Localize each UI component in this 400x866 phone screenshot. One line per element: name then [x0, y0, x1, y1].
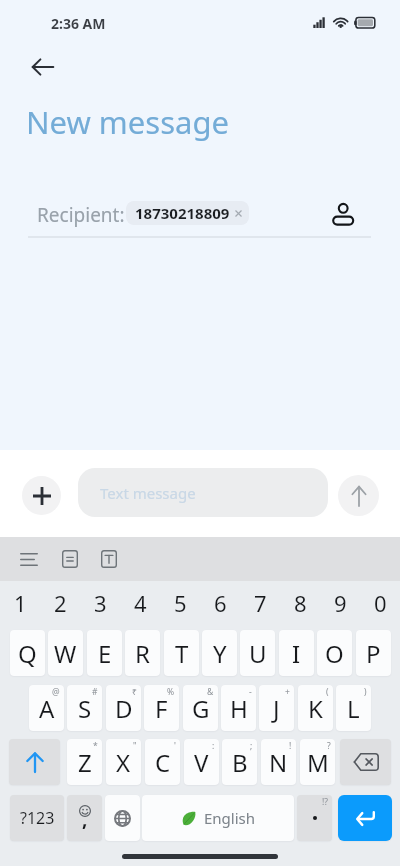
- button[interactable]: F: [144, 685, 179, 731]
- button[interactable]: 6: [200, 581, 240, 625]
- staticText: ;: [250, 740, 253, 752]
- staticText: E: [98, 637, 112, 670]
- staticText: O: [325, 637, 344, 670]
- button[interactable]: C: [145, 739, 180, 785]
- staticText: X: [116, 746, 131, 779]
- button[interactable]: T: [164, 630, 199, 676]
- button[interactable]: U: [240, 630, 275, 676]
- button[interactable]: B: [222, 739, 257, 785]
- button[interactable]: Enter: [338, 795, 392, 841]
- button[interactable]: Clipboard: [51, 539, 88, 579]
- button[interactable]: S: [67, 685, 102, 731]
- staticText: @: [52, 686, 60, 698]
- button[interactable]: 0: [360, 581, 400, 625]
- staticText: !?: [322, 796, 328, 808]
- button[interactable]: 5: [160, 581, 200, 625]
- staticText: -: [249, 686, 252, 698]
- staticText: I: [292, 637, 301, 670]
- button[interactable]: Shift: [9, 739, 60, 785]
- staticText: :: [212, 740, 215, 752]
- staticText: ": [133, 740, 137, 752]
- staticText: ): [364, 686, 367, 698]
- staticText: #: [92, 686, 98, 698]
- button[interactable]: Text message: [78, 468, 328, 517]
- staticText: Z: [78, 746, 92, 779]
- button[interactable]: Q: [10, 630, 45, 676]
- staticText: D: [115, 692, 133, 725]
- staticText: *: [93, 740, 98, 752]
- staticText: ,: [82, 806, 88, 832]
- button[interactable]: W: [48, 630, 83, 676]
- button[interactable]: ?123: [10, 795, 64, 841]
- button[interactable]: Choose contact: [320, 190, 368, 238]
- button[interactable]: N: [261, 739, 296, 785]
- staticText: Text message: [100, 483, 196, 503]
- button[interactable]: Back: [19, 43, 67, 91]
- staticText: ': [174, 740, 176, 752]
- button[interactable]: Z: [67, 739, 102, 785]
- button[interactable]: Backspace: [340, 739, 391, 785]
- button[interactable]: Keyboard menu: [10, 539, 47, 579]
- button[interactable]: A: [29, 685, 64, 731]
- staticText: ?: [327, 740, 331, 752]
- staticText: Recipient:: [37, 202, 125, 228]
- button[interactable]: H: [221, 685, 256, 731]
- staticText: (: [326, 686, 329, 698]
- button[interactable]: I: [279, 630, 314, 676]
- staticText: V: [194, 746, 209, 779]
- staticText: T: [175, 637, 189, 670]
- button[interactable]: 9: [320, 581, 360, 625]
- staticText: K: [308, 692, 323, 725]
- staticText: &: [207, 686, 214, 698]
- staticText: 18730218809: [135, 203, 230, 223]
- button[interactable]: Period: [297, 795, 332, 841]
- staticText: C: [155, 746, 171, 779]
- button[interactable]: Space: [142, 795, 294, 841]
- button[interactable]: G: [183, 685, 218, 731]
- button[interactable]: 18730218809: [126, 201, 249, 225]
- staticText: H: [230, 692, 248, 725]
- staticText: 8: [294, 588, 307, 618]
- button[interactable]: 4: [120, 581, 160, 625]
- button[interactable]: Add attachment: [22, 476, 61, 515]
- button[interactable]: 3: [80, 581, 120, 625]
- button[interactable]: Y: [202, 630, 237, 676]
- staticText: W: [54, 637, 77, 670]
- button[interactable]: Text editing: [90, 539, 127, 579]
- button[interactable]: M: [300, 739, 335, 785]
- staticText: U: [249, 637, 267, 670]
- button[interactable]: Emoji: [67, 795, 102, 841]
- staticText: ₹: [132, 686, 137, 698]
- button[interactable]: Send: [338, 475, 379, 516]
- button[interactable]: J: [259, 685, 294, 731]
- staticText: Q: [18, 637, 37, 670]
- button[interactable]: D: [106, 685, 141, 731]
- button[interactable]: K: [298, 685, 333, 731]
- button[interactable]: E: [87, 630, 122, 676]
- staticText: +: [285, 686, 290, 698]
- staticText: N: [269, 746, 288, 779]
- button[interactable]: V: [184, 739, 219, 785]
- staticText: 2:36 AM: [51, 14, 106, 33]
- staticText: 2: [54, 588, 67, 618]
- button[interactable]: 7: [240, 581, 280, 625]
- button[interactable]: 2: [40, 581, 80, 625]
- staticText: 3: [94, 588, 107, 618]
- button[interactable]: R: [125, 630, 160, 676]
- staticText: P: [366, 637, 381, 670]
- button[interactable]: 1: [0, 581, 40, 625]
- staticText: B: [232, 746, 248, 779]
- button[interactable]: Change language: [105, 795, 140, 841]
- staticText: F: [155, 692, 168, 725]
- button[interactable]: X: [106, 739, 141, 785]
- staticText: 4: [134, 588, 147, 618]
- staticText: !: [289, 740, 292, 752]
- button[interactable]: P: [356, 630, 391, 676]
- button[interactable]: O: [317, 630, 352, 676]
- staticText: 1: [14, 588, 27, 618]
- button[interactable]: L: [336, 685, 371, 731]
- staticText: 0: [374, 588, 387, 618]
- staticText: New message: [26, 101, 229, 143]
- button[interactable]: 8: [280, 581, 320, 625]
- staticText: 7: [254, 588, 267, 618]
